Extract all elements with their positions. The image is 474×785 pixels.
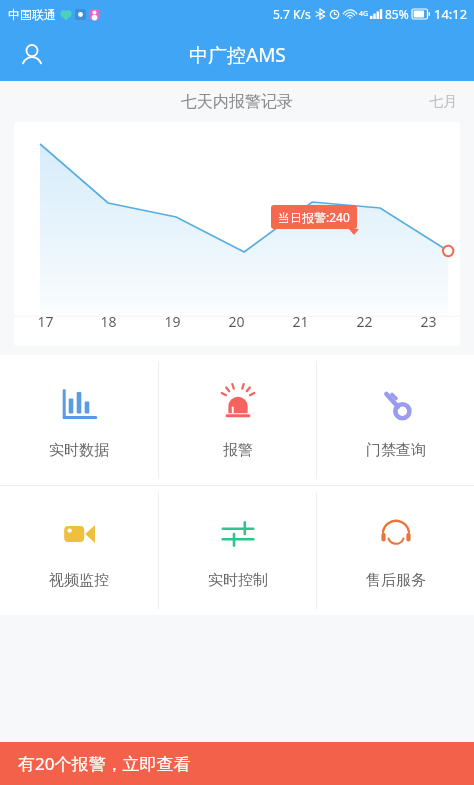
button[interactable]: 实时数据	[0, 355, 158, 485]
staticText: 18	[100, 312, 117, 331]
button[interactable]: 报警	[159, 355, 316, 485]
staticText: 七天内报警记录	[181, 92, 293, 112]
staticText: 5.7 K/s	[273, 6, 311, 22]
staticText: 22	[356, 312, 373, 331]
staticText: 门禁查询	[366, 441, 426, 460]
staticText: 21	[292, 312, 309, 331]
staticText: 报警	[223, 441, 253, 460]
staticText: 售后服务	[366, 571, 426, 590]
staticText: 有20个报警，立即查看	[18, 752, 191, 775]
staticText: 实时数据	[49, 441, 109, 460]
staticText: 20	[228, 312, 245, 331]
button[interactable]: Profile	[10, 33, 54, 77]
staticText: 19	[164, 312, 181, 331]
staticText: 14:12	[434, 5, 468, 23]
staticText: 23	[420, 312, 437, 331]
staticText: 4G	[359, 9, 369, 19]
button[interactable]: 门禁查询	[317, 355, 474, 485]
staticText: 17	[37, 312, 54, 331]
button[interactable]: 售后服务	[317, 486, 474, 615]
staticText: 当日报警:240	[278, 209, 350, 225]
button[interactable]: 视频监控	[0, 486, 158, 615]
staticText: 实时控制	[208, 571, 268, 590]
button[interactable]: 有20个报警，立即查看	[0, 742, 474, 785]
button[interactable]: 实时控制	[159, 486, 316, 615]
staticText: 七月	[429, 93, 457, 111]
staticText: 85%	[385, 6, 409, 22]
staticText: 中国联通	[8, 7, 56, 22]
staticText: 中广控AMS	[189, 42, 286, 68]
staticText: 视频监控	[49, 571, 109, 590]
